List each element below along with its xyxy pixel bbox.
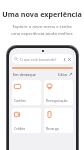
- button[interactable]: Crédito: [12, 108, 41, 133]
- staticText: uma experiência ainda melhor.: [0, 30, 84, 36]
- staticText: Em destaque: [13, 72, 36, 77]
- button[interactable]: Cartões: [12, 80, 41, 105]
- button[interactable]: Limpar busca: [67, 57, 71, 61]
- button[interactable]: Recarga: [44, 108, 73, 133]
- staticText: Cartões: [14, 98, 26, 102]
- button[interactable]: Busca por voz: [62, 57, 66, 61]
- staticText: Renegociação: [46, 98, 68, 102]
- staticText: Editar: [58, 72, 68, 77]
- staticText: O que está buscando?: [20, 57, 62, 62]
- staticText: Recarga: [46, 126, 59, 130]
- button[interactable]: O que está buscando?: [12, 54, 73, 64]
- staticText: Crédito: [14, 126, 26, 130]
- staticText: Uma nova experiência: [0, 9, 84, 19]
- button[interactable]: Renegociação: [44, 80, 73, 105]
- staticText: Explore o novo menu e tenha: [0, 23, 84, 29]
- button[interactable]: Editar: [58, 72, 72, 77]
